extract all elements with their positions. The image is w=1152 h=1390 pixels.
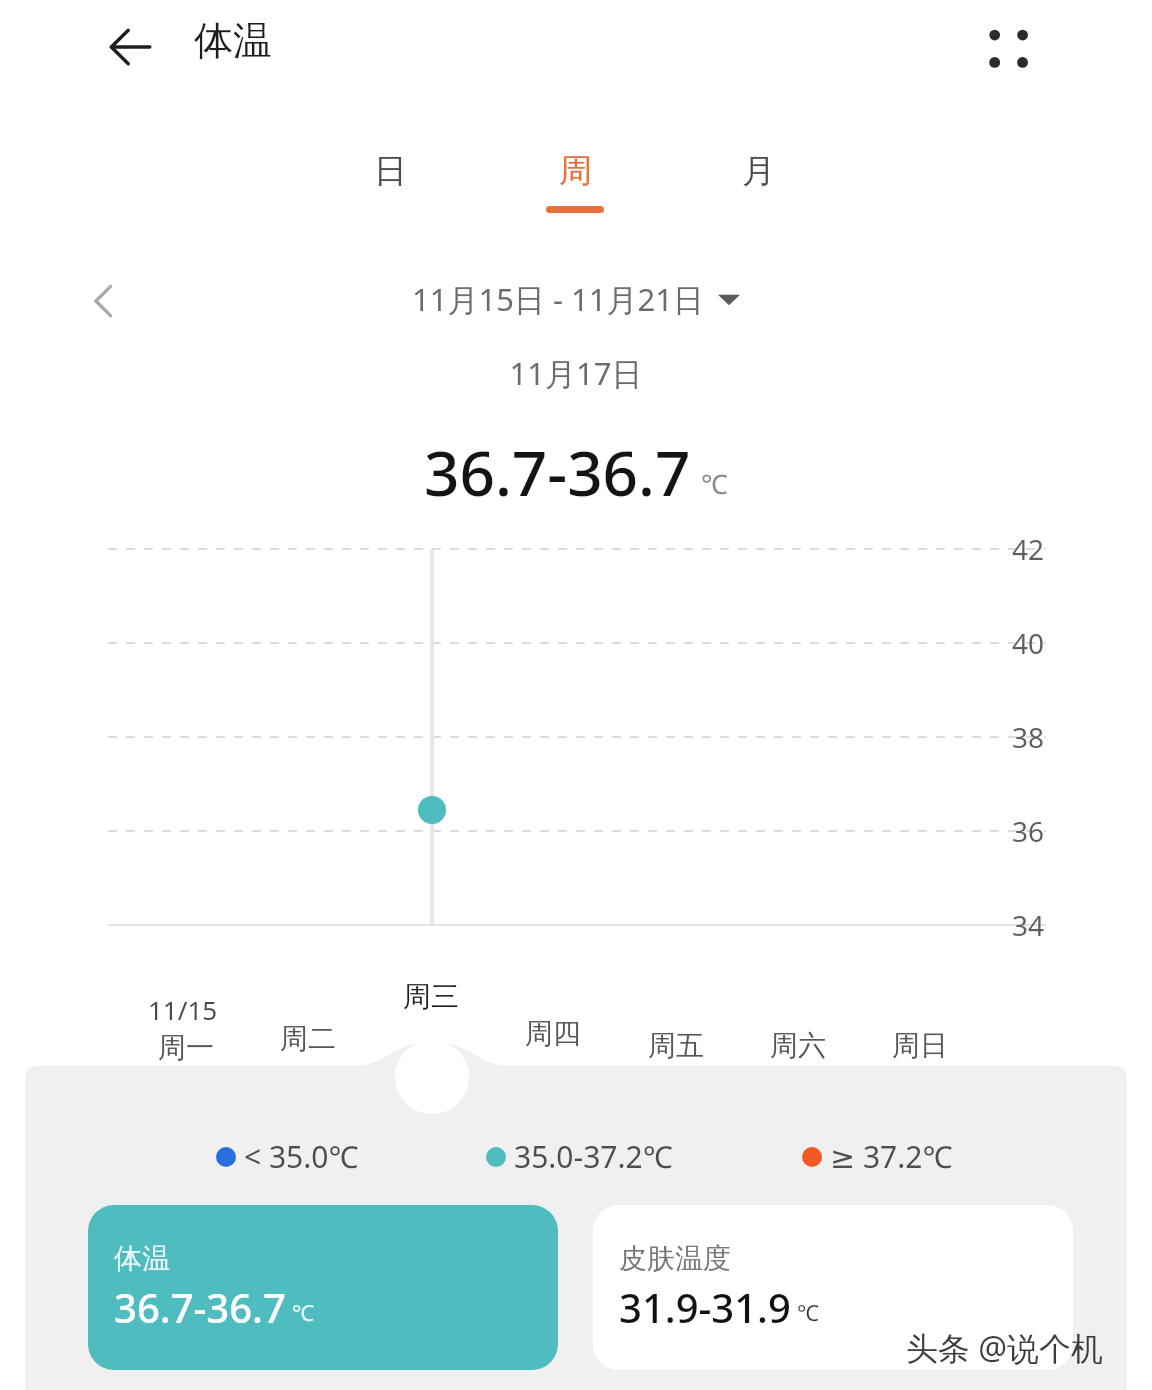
button[interactable]: 周 bbox=[523, 150, 627, 213]
button[interactable]: 日 bbox=[338, 150, 442, 206]
staticText: 月 bbox=[742, 150, 775, 192]
staticText: 周四 bbox=[525, 1016, 581, 1051]
staticText: 11月17日 bbox=[0, 352, 1152, 394]
button[interactable]: 月 bbox=[706, 150, 810, 206]
button[interactable]: Back bbox=[97, 18, 157, 76]
button[interactable]: 体温 bbox=[88, 1205, 558, 1370]
staticText: 42 bbox=[1012, 530, 1045, 568]
staticText: 体温 bbox=[194, 16, 272, 65]
staticText: 周三 bbox=[403, 979, 459, 1014]
staticText: ℃ bbox=[701, 465, 728, 502]
staticText: ℃ bbox=[797, 1297, 819, 1327]
staticText: 31.9-31.9 bbox=[619, 1280, 791, 1334]
staticText: 周一 bbox=[158, 1030, 214, 1065]
staticText: 11/15 bbox=[148, 992, 218, 1027]
staticText: 周五 bbox=[648, 1028, 704, 1063]
staticText: 周日 bbox=[892, 1028, 948, 1063]
staticText: 38 bbox=[1012, 718, 1045, 756]
staticText: 周六 bbox=[770, 1028, 826, 1063]
staticText: 40 bbox=[1012, 624, 1045, 662]
button[interactable]: 皮肤温度 bbox=[593, 1205, 1073, 1370]
staticText: 皮肤温度 bbox=[619, 1241, 731, 1276]
button[interactable]: Previous week bbox=[70, 266, 140, 336]
staticText: 周 bbox=[559, 150, 592, 192]
staticText: 36 bbox=[1012, 812, 1045, 850]
staticText: 34 bbox=[1012, 906, 1045, 944]
staticText: 头条 @说个机 bbox=[906, 1326, 1104, 1370]
staticText: 36.7-36.7 bbox=[114, 1280, 286, 1334]
staticText: 35.0-37.2℃ bbox=[514, 1136, 673, 1177]
button[interactable]: More options bbox=[966, 12, 1048, 84]
staticText: ℃ bbox=[292, 1297, 314, 1327]
staticText: 周二 bbox=[280, 1021, 336, 1056]
staticText: 日 bbox=[374, 150, 407, 192]
staticText: 体温 bbox=[114, 1241, 170, 1276]
staticText: 11月15日 - 11月21日 bbox=[412, 278, 704, 320]
staticText: < 35.0℃ bbox=[244, 1136, 359, 1177]
staticText: ≥ 37.2℃ bbox=[830, 1136, 953, 1177]
button[interactable]: 11月15日 - 11月21日 bbox=[0, 278, 1152, 320]
staticText: 36.7-36.7 bbox=[424, 430, 691, 514]
